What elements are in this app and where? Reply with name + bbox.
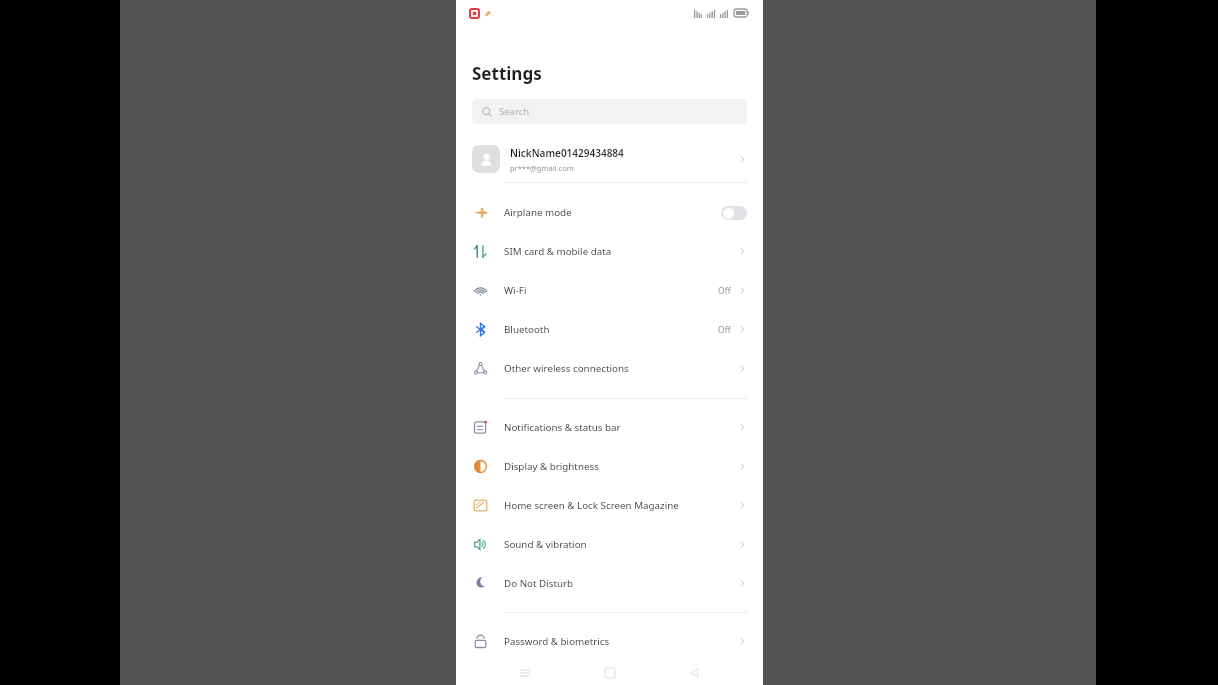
staticText: SIM card & mobile data — [504, 245, 738, 258]
button[interactable]: Password & biometrics — [456, 622, 763, 661]
button[interactable]: Home screen & Lock Screen Magazine — [456, 486, 763, 525]
button[interactable]: Display & brightness — [456, 447, 763, 486]
button[interactable]: Notifications & status bar — [456, 408, 763, 447]
button[interactable]: NickName01429434884 — [456, 136, 763, 182]
staticText: Search — [499, 105, 530, 118]
staticText: Display & brightness — [504, 460, 738, 473]
button[interactable]: Airplane mode toggle — [721, 206, 747, 220]
staticText: Password & biometrics — [504, 635, 738, 648]
button[interactable]: Do Not Disturb — [456, 564, 763, 603]
button[interactable]: Recent apps — [510, 661, 540, 685]
staticText: Airplane mode — [504, 206, 721, 219]
button[interactable]: Airplane mode — [456, 193, 763, 232]
staticText: Do Not Disturb — [504, 577, 738, 590]
staticText: pr***@gmail.com — [510, 163, 574, 173]
staticText: Other wireless connections — [504, 362, 738, 375]
staticText: Off — [718, 285, 731, 297]
button[interactable]: Search — [472, 99, 747, 124]
button[interactable]: Wi-Fi — [456, 271, 763, 310]
button[interactable]: Other wireless connections — [456, 349, 763, 388]
button[interactable]: Home — [595, 661, 625, 685]
button[interactable]: Back — [679, 661, 709, 685]
button[interactable]: Sound & vibration — [456, 525, 763, 564]
button[interactable]: SIM card & mobile data — [456, 232, 763, 271]
staticText: Wi-Fi — [504, 284, 718, 297]
staticText: NickName01429434884 — [510, 146, 624, 160]
staticText: Home screen & Lock Screen Magazine — [504, 499, 738, 512]
staticText: Sound & vibration — [504, 538, 738, 551]
staticText: Off — [718, 324, 731, 336]
staticText: Settings — [472, 62, 542, 85]
staticText: Notifications & status bar — [504, 421, 738, 434]
button[interactable]: Bluetooth — [456, 310, 763, 349]
staticText: Bluetooth — [504, 323, 718, 336]
